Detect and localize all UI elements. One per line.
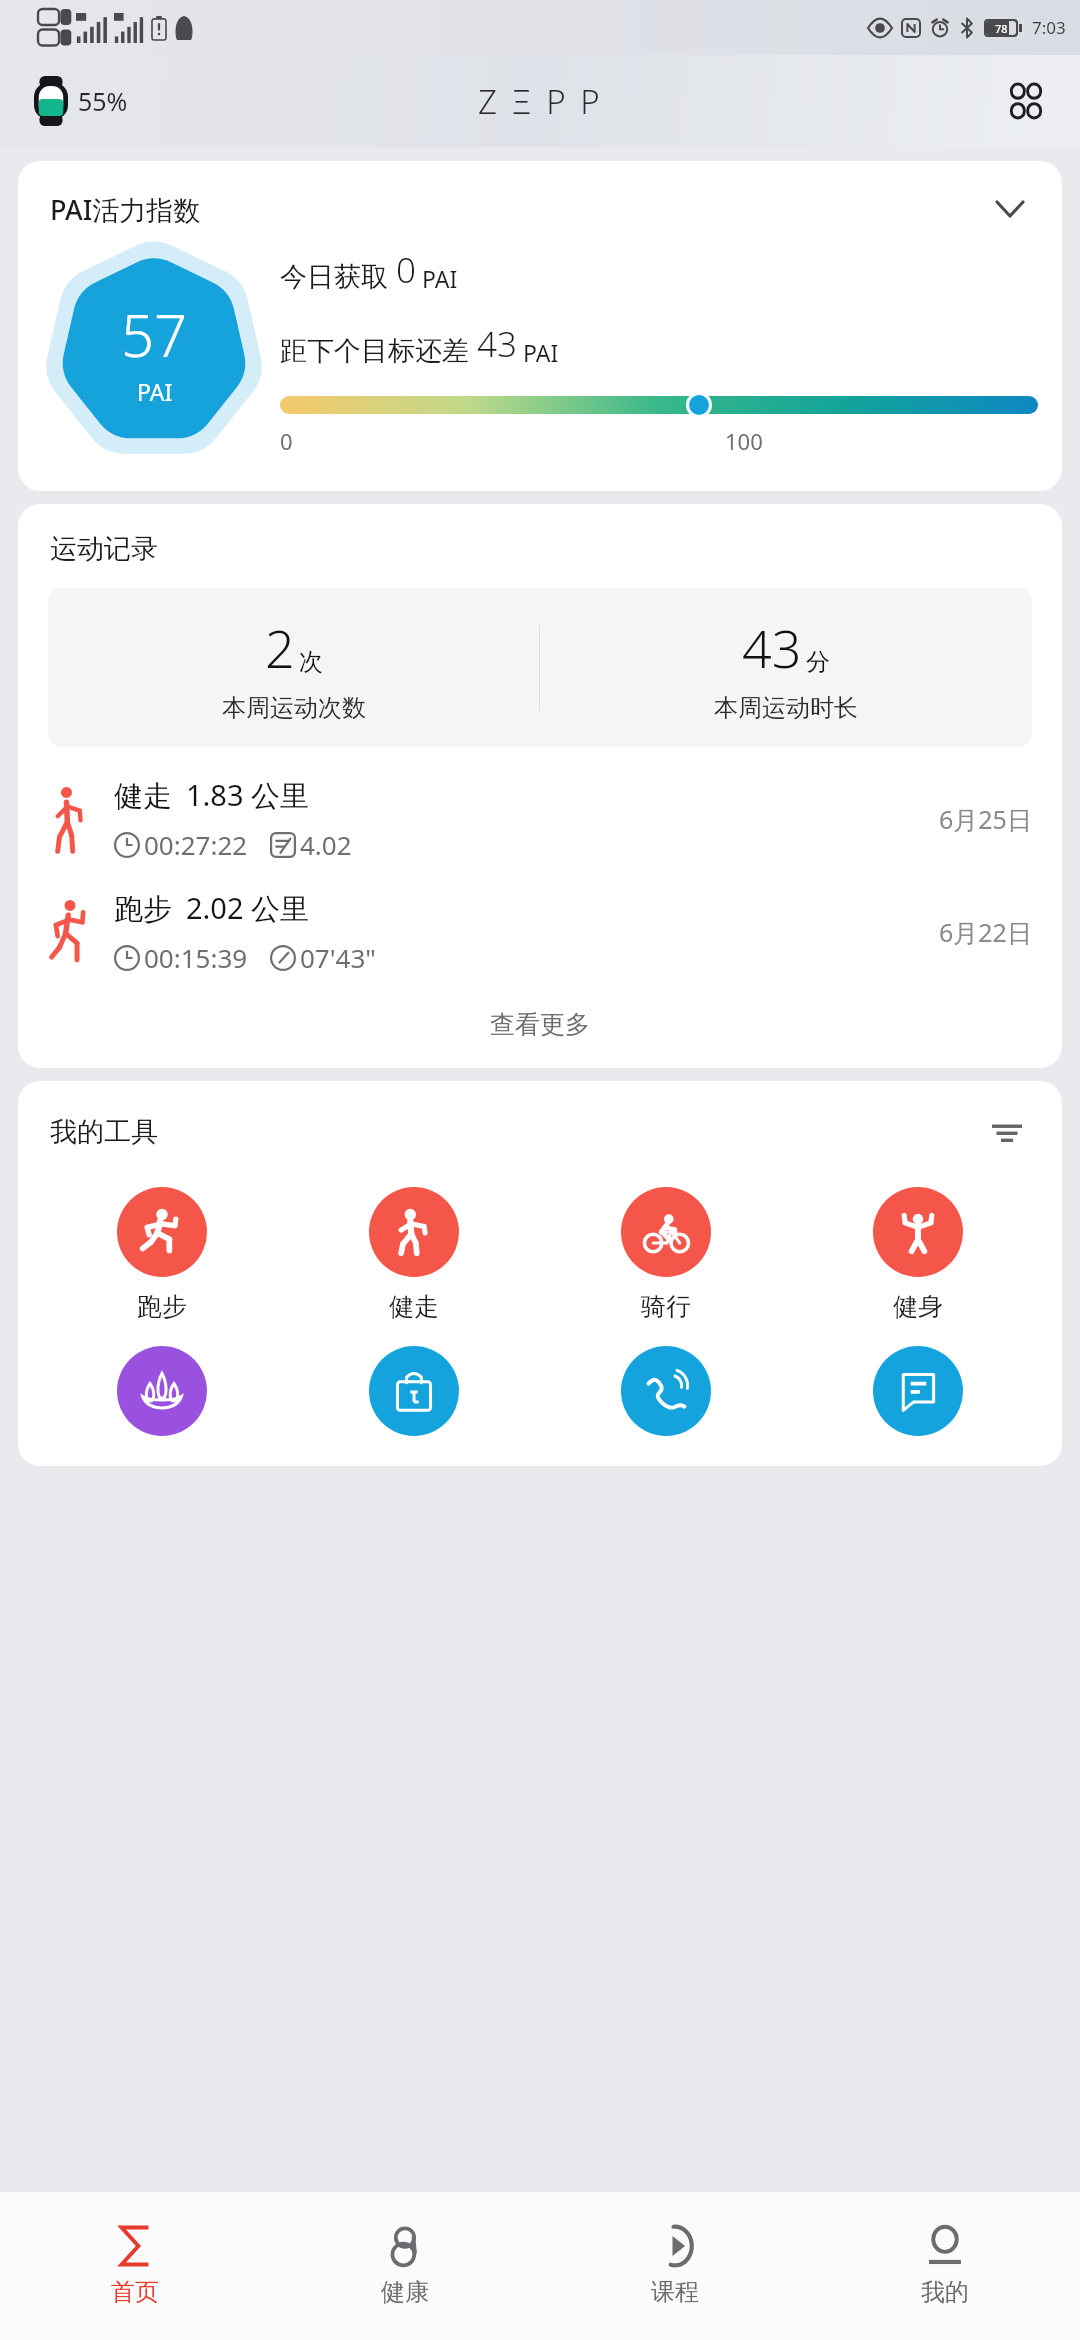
staticText: 骑行 xyxy=(641,1291,691,1322)
staticText: 分 xyxy=(806,647,830,677)
button[interactable]: Edit tools xyxy=(984,1109,1030,1155)
staticText: 健走 xyxy=(114,778,172,815)
button[interactable]: 骑行 xyxy=(540,1187,792,1322)
button[interactable]: Tool xyxy=(792,1346,1044,1436)
button[interactable]: 我的 xyxy=(810,2192,1080,2340)
staticText: 次 xyxy=(299,647,323,677)
staticText: PAI xyxy=(416,263,458,294)
staticText: PAI xyxy=(517,337,559,368)
staticText: 运动记录 xyxy=(50,532,158,566)
staticText: 0 xyxy=(396,246,416,294)
button[interactable]: 课程 xyxy=(540,2192,810,2340)
button[interactable]: 55% xyxy=(34,76,128,126)
button[interactable]: 健康 xyxy=(270,2192,540,2340)
staticText: 今日获取 xyxy=(280,257,396,294)
staticText: 6月25日 xyxy=(939,802,1032,836)
staticText: 07'43" xyxy=(300,940,376,975)
button[interactable]: PAI活力指数 xyxy=(18,161,1062,491)
staticText: 我的工具 xyxy=(50,1115,158,1149)
button[interactable]: Collapse xyxy=(988,187,1032,231)
button[interactable]: 首页 xyxy=(0,2192,270,2340)
staticText: PAI xyxy=(137,376,173,407)
staticText: 跑步 xyxy=(114,891,172,928)
staticText: 课程 xyxy=(651,2277,699,2307)
button[interactable]: Tool xyxy=(36,1346,288,1436)
staticText: 本周运动次数 xyxy=(222,693,366,723)
button[interactable]: 健走 xyxy=(18,775,1062,862)
button[interactable]: 健走 xyxy=(288,1187,540,1322)
staticText: 7:03 xyxy=(1032,16,1066,39)
staticText: Z Ξ P P xyxy=(478,79,603,124)
staticText: 健康 xyxy=(381,2277,429,2307)
staticText: 1.83 公里 xyxy=(186,775,310,815)
staticText: 100 xyxy=(725,426,763,456)
staticText: 距下个目标还差 xyxy=(280,331,477,368)
staticText: 43 xyxy=(742,612,802,683)
staticText: 00:27:22 xyxy=(144,827,248,862)
staticText: 55% xyxy=(78,84,128,118)
staticText: 0 xyxy=(280,426,293,456)
button[interactable]: 健身 xyxy=(792,1187,1044,1322)
staticText: 本周运动时长 xyxy=(714,693,858,723)
staticText: PAI活力指数 xyxy=(50,191,201,228)
staticText: 首页 xyxy=(111,2277,159,2307)
button[interactable]: 跑步 xyxy=(18,888,1062,975)
staticText: 2.02 公里 xyxy=(186,888,310,928)
staticText: 健身 xyxy=(893,1291,943,1322)
button[interactable]: 跑步 xyxy=(36,1187,288,1322)
staticText: 我的 xyxy=(921,2277,969,2307)
staticText: 57 xyxy=(121,295,188,374)
staticText: 4.02 xyxy=(300,827,352,862)
staticText: 78 xyxy=(995,21,1008,35)
staticText: 跑步 xyxy=(137,1291,187,1322)
staticText: 6月22日 xyxy=(939,915,1032,949)
staticText: 查看更多 xyxy=(490,1009,590,1040)
button[interactable]: 查看更多 xyxy=(18,997,1062,1052)
staticText: 2 xyxy=(265,612,295,683)
button[interactable]: More apps xyxy=(1002,77,1050,125)
button[interactable]: Tool xyxy=(540,1346,792,1436)
staticText: 00:15:39 xyxy=(144,940,248,975)
button[interactable]: Tool xyxy=(288,1346,540,1436)
staticText: 43 xyxy=(477,320,517,368)
button[interactable]: 2 xyxy=(48,612,1032,723)
staticText: 健走 xyxy=(389,1291,439,1322)
